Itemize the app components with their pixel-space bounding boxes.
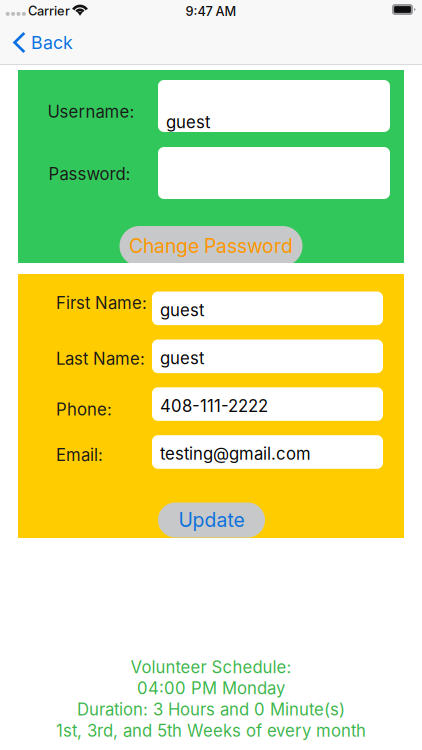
button[interactable]: Back bbox=[0, 20, 83, 64]
staticText: Back bbox=[31, 32, 73, 53]
staticText: Phone: bbox=[56, 399, 112, 419]
staticText: 408-111-2222 bbox=[160, 396, 268, 416]
staticText: guest bbox=[160, 300, 204, 320]
staticText: 9:47 AM bbox=[185, 3, 236, 19]
staticText: Password: bbox=[48, 164, 130, 184]
staticText: Change Password bbox=[129, 234, 293, 258]
staticText: First Name: bbox=[56, 293, 147, 313]
staticText: Last Name: bbox=[56, 349, 145, 369]
button[interactable]: Update bbox=[158, 502, 265, 537]
staticText: guest bbox=[160, 348, 204, 368]
button[interactable]: Change Password bbox=[119, 226, 302, 266]
staticText: Email: bbox=[56, 445, 103, 465]
staticText: Volunteer Schedule: bbox=[130, 657, 291, 677]
staticText: Carrier bbox=[28, 3, 70, 19]
staticText: 04:00 PM Monday bbox=[137, 678, 285, 698]
staticText: Username: bbox=[47, 101, 134, 122]
staticText: Update bbox=[178, 508, 244, 532]
staticText: guest bbox=[166, 112, 210, 132]
staticText: Duration: 3 Hours and 0 Minute(s) bbox=[77, 699, 345, 719]
staticText: 1st, 3rd, and 5th Weeks of every month bbox=[56, 720, 366, 741]
staticText: testing@gmail.com bbox=[160, 444, 311, 464]
